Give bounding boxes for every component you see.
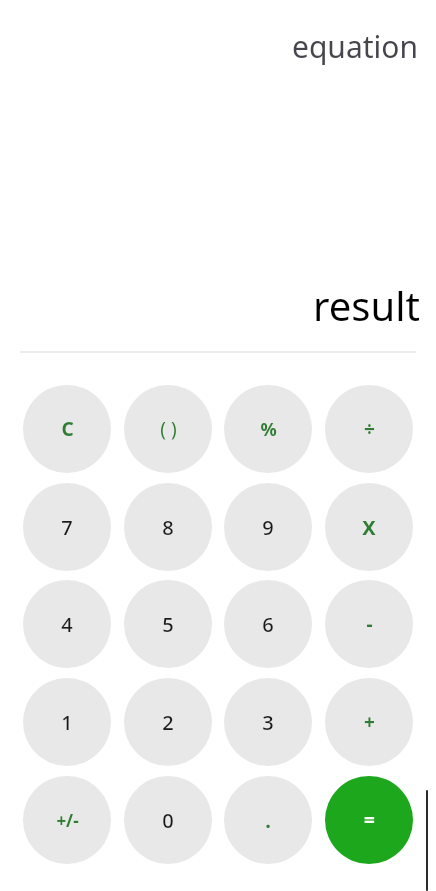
button[interactable]: 7	[23, 483, 111, 571]
button[interactable]: +/-	[23, 776, 111, 864]
staticText: 2	[162, 709, 174, 736]
staticText: =	[364, 807, 375, 833]
button[interactable]: ÷	[325, 385, 413, 473]
staticText: result	[313, 278, 420, 330]
button[interactable]: X	[325, 483, 413, 571]
button[interactable]: -	[325, 580, 413, 668]
staticText: ÷	[364, 416, 375, 442]
staticText: 7	[61, 514, 73, 541]
button[interactable]: 2	[124, 678, 212, 766]
staticText: C	[61, 416, 74, 442]
staticText: equation	[292, 26, 418, 67]
staticText: 3	[262, 709, 274, 736]
button[interactable]: 6	[224, 580, 312, 668]
staticText: 5	[162, 611, 174, 638]
staticText: %	[260, 417, 277, 442]
staticText: 4	[61, 611, 73, 638]
button[interactable]: 1	[23, 678, 111, 766]
button[interactable]: 0	[124, 776, 212, 864]
button[interactable]: 9	[224, 483, 312, 571]
staticText: .	[265, 807, 271, 834]
button[interactable]: C	[23, 385, 111, 473]
button[interactable]: 5	[124, 580, 212, 668]
button[interactable]: .	[224, 776, 312, 864]
other: Scroll indicator	[426, 790, 428, 891]
button[interactable]: ( )	[124, 385, 212, 473]
staticText: +	[364, 709, 375, 735]
staticText: 6	[262, 611, 274, 638]
staticText: 0	[162, 807, 174, 834]
staticText: -	[366, 611, 373, 637]
staticText: 1	[61, 709, 73, 736]
button[interactable]: +	[325, 678, 413, 766]
button[interactable]: 8	[124, 483, 212, 571]
staticText: 9	[262, 514, 274, 541]
button[interactable]: %	[224, 385, 312, 473]
button[interactable]: =	[325, 776, 413, 864]
staticText: 8	[162, 514, 174, 541]
staticText: +/-	[56, 809, 79, 832]
staticText: X	[362, 514, 376, 541]
button[interactable]: 4	[23, 580, 111, 668]
staticText: ( )	[160, 416, 177, 442]
button[interactable]: 3	[224, 678, 312, 766]
